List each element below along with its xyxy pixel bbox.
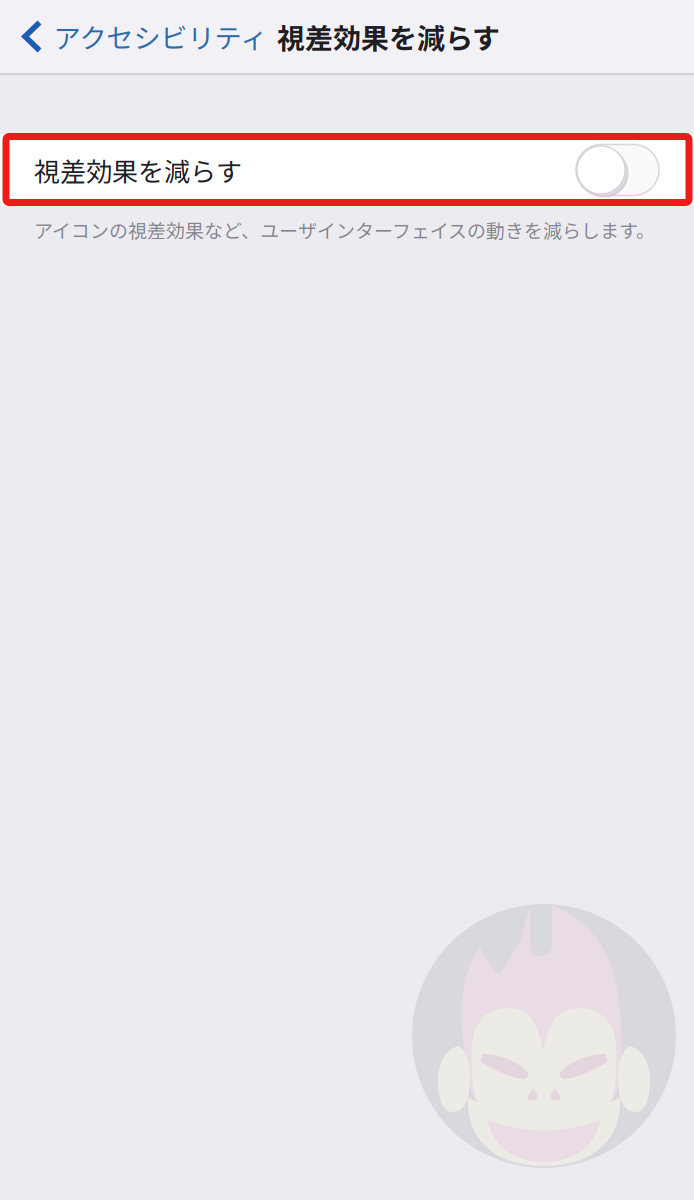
button[interactable]: 戻る: アクセシビリティ xyxy=(0,0,283,73)
staticText: 視差効果を減らす xyxy=(277,16,500,57)
button[interactable]: 視差効果を減らす, オフ xyxy=(0,134,694,206)
staticText: 視差効果を減らす xyxy=(34,151,242,189)
staticText: アイコンの視差効果など、ユーザインターフェイスの動きを減らします。 xyxy=(34,216,655,243)
staticText: アクセシビリティ xyxy=(53,17,267,56)
